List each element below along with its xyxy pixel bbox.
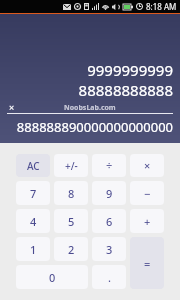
staticText: × — [144, 158, 151, 173]
staticText: 4 — [30, 214, 37, 229]
staticText: 88888888888 — [7, 80, 173, 100]
button[interactable]: Subtract — [130, 181, 164, 205]
staticText: +/- — [65, 159, 78, 173]
staticText: 6 — [106, 214, 113, 229]
staticText: + — [144, 214, 151, 229]
button[interactable]: 9 — [92, 181, 126, 205]
button[interactable]: 5 — [54, 209, 88, 233]
staticText: 9 — [106, 186, 113, 201]
staticText: 1 — [30, 242, 37, 257]
button[interactable]: 1 — [16, 237, 50, 261]
staticText: 2 — [68, 242, 75, 257]
button[interactable]: 6 — [92, 209, 126, 233]
staticText: − — [144, 186, 151, 201]
staticText: 888888890000000000000 — [7, 118, 173, 136]
button[interactable]: 4 — [16, 209, 50, 233]
button[interactable]: Add — [130, 209, 164, 233]
staticText: 0 — [49, 270, 56, 285]
button[interactable]: 2 — [54, 237, 88, 261]
staticText: × — [9, 101, 15, 113]
button[interactable]: 7 — [16, 181, 50, 205]
button[interactable]: 3 — [92, 237, 126, 261]
button[interactable]: 8 — [54, 181, 88, 205]
staticText: NoobsLab.com — [64, 103, 116, 113]
button[interactable]: Multiply — [130, 154, 164, 177]
button[interactable]: 0 — [16, 265, 88, 289]
staticText: . — [108, 270, 111, 285]
staticText: ÷ — [106, 158, 113, 173]
staticText: AC — [27, 159, 40, 173]
staticText: 3 — [106, 242, 113, 257]
staticText: 8:18 AM — [146, 1, 177, 12]
button[interactable]: Decimal point — [92, 265, 126, 289]
button[interactable]: All clear — [16, 154, 50, 177]
staticText: 7 — [30, 186, 37, 201]
button[interactable]: Equals — [130, 237, 164, 289]
button[interactable]: Divide — [92, 154, 126, 177]
staticText: 8 — [68, 186, 75, 201]
staticText: 9999999999 — [7, 60, 173, 80]
staticText: 5 — [68, 214, 75, 229]
staticText: = — [144, 256, 151, 271]
button[interactable]: Plus minus — [54, 154, 88, 177]
